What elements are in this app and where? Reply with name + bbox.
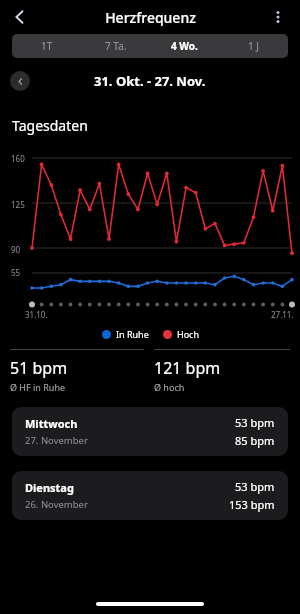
button[interactable]: 1 J bbox=[219, 34, 288, 58]
staticText: Tagesdaten bbox=[12, 116, 88, 135]
staticText: 1 J bbox=[248, 39, 260, 53]
button[interactable]: Zurück bbox=[4, 1, 36, 33]
staticText: 125 bbox=[11, 199, 25, 208]
staticText: Ø hoch bbox=[154, 381, 185, 393]
staticText: Hoch bbox=[177, 328, 199, 340]
staticText: 53 bpm bbox=[235, 415, 275, 430]
staticText: In Ruhe bbox=[116, 328, 149, 340]
staticText: Dienstag bbox=[25, 480, 74, 495]
button[interactable]: 7 Ta. bbox=[81, 34, 150, 58]
staticText: 27.11. bbox=[271, 309, 294, 320]
staticText: 27. November bbox=[25, 434, 88, 447]
staticText: 1T bbox=[41, 39, 53, 53]
button[interactable]: 51 bpm bbox=[10, 349, 144, 393]
staticText: Herzfrequenz bbox=[105, 8, 196, 27]
button[interactable]: Weitere Optionen bbox=[264, 3, 292, 31]
staticText: Ø HF in Ruhe bbox=[10, 381, 66, 393]
button[interactable]: 4 Wo. bbox=[150, 34, 219, 58]
staticText: 26. November bbox=[25, 498, 88, 511]
button[interactable]: 121 bpm bbox=[154, 349, 290, 393]
staticText: 160 bbox=[11, 153, 25, 162]
staticText: 7 Ta. bbox=[105, 39, 127, 53]
staticText: 55 bbox=[11, 267, 21, 278]
staticText: 53 bpm bbox=[235, 479, 275, 494]
staticText: 31.10. bbox=[25, 309, 48, 320]
staticText: 121 bpm bbox=[154, 357, 221, 379]
staticText: 85 bpm bbox=[235, 433, 275, 448]
staticText: 4 Wo. bbox=[171, 39, 198, 53]
staticText: 31. Okt. - 27. Nov. bbox=[94, 72, 206, 90]
staticText: 90 bbox=[11, 244, 21, 253]
button[interactable]: Vorheriger Zeitraum bbox=[10, 71, 30, 91]
staticText: 51 bpm bbox=[10, 357, 68, 379]
button[interactable]: 1T bbox=[12, 34, 81, 58]
button[interactable]: Mittwoch bbox=[12, 407, 288, 456]
staticText: 153 bpm bbox=[229, 497, 275, 512]
staticText: Mittwoch bbox=[25, 416, 78, 431]
button[interactable]: Dienstag bbox=[12, 471, 288, 520]
